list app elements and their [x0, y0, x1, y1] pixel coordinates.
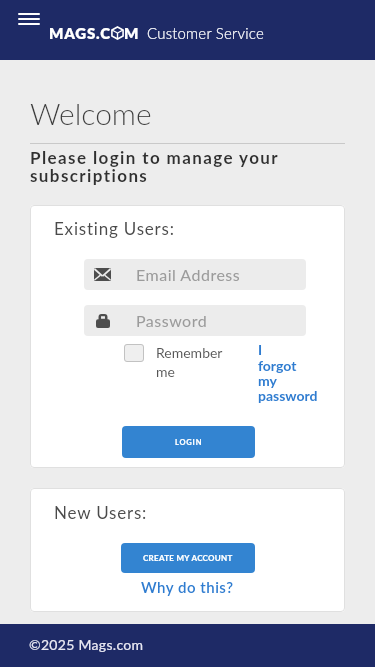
staticText: Email Address	[136, 265, 241, 284]
button[interactable]	[18, 13, 44, 31]
staticText: Password	[136, 311, 208, 330]
staticText: CREATE MY ACCOUNT	[143, 553, 233, 563]
button[interactable]: LOGIN	[122, 426, 255, 458]
staticText: Customer Service	[147, 24, 264, 42]
button[interactable]: I forgot my password	[258, 341, 318, 404]
button[interactable]: Email Address	[84, 259, 306, 290]
staticText: Existing Users:	[54, 218, 175, 238]
staticText: ©2025 Mags.com	[29, 636, 144, 653]
staticText: Remember me	[156, 344, 232, 380]
staticText: MAGS.C	[49, 24, 111, 42]
staticText: Please login to manage your subscription…	[30, 147, 330, 185]
staticText: Welcome	[30, 95, 152, 131]
staticText: M	[124, 24, 140, 42]
button[interactable]: Password	[84, 305, 306, 336]
staticText: LOGIN	[175, 438, 203, 447]
button[interactable]: CREATE MY ACCOUNT	[121, 543, 255, 573]
staticText: New Users:	[54, 502, 148, 522]
button[interactable]: Why do this?	[141, 578, 234, 596]
button[interactable]: Remember me	[124, 344, 232, 380]
